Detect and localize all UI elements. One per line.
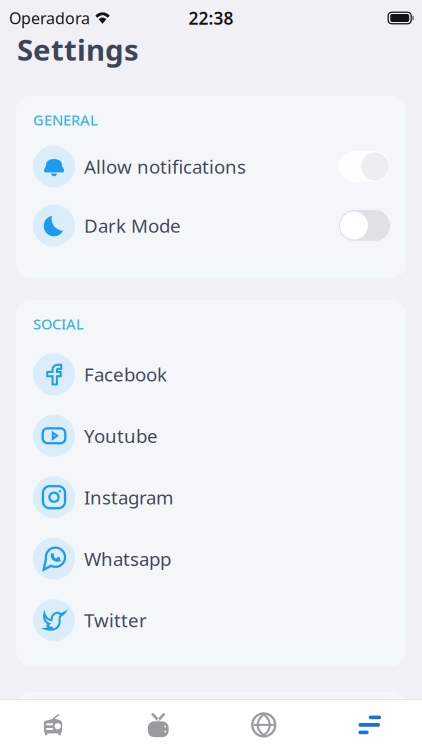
button[interactable]: Settings xyxy=(316,700,422,750)
staticText: Youtube xyxy=(84,423,158,448)
button[interactable]: Youtube xyxy=(16,405,406,467)
button[interactable]: Browse xyxy=(211,700,316,750)
staticText: 22:38 xyxy=(188,6,233,29)
button[interactable]: Dark Mode xyxy=(16,196,406,255)
button[interactable]: Twitter xyxy=(16,589,406,651)
button[interactable]: Facebook xyxy=(16,344,406,405)
staticText: Settings xyxy=(17,30,139,69)
staticText: SOCIAL xyxy=(33,314,84,333)
staticText: Allow notifications xyxy=(84,154,246,179)
staticText: Dark Mode xyxy=(84,213,181,238)
staticText: Twitter xyxy=(84,608,147,632)
staticText: Whatsapp xyxy=(84,546,171,571)
staticText: Operadora xyxy=(9,7,90,29)
button[interactable]: Radio xyxy=(0,700,105,750)
button[interactable]: Allow notifications xyxy=(16,137,406,196)
staticText: GENERAL xyxy=(33,110,98,129)
staticText: Instagram xyxy=(84,485,173,510)
button[interactable]: TV xyxy=(105,700,211,750)
button[interactable]: Whatsapp xyxy=(16,528,406,589)
button[interactable]: Instagram xyxy=(16,466,406,528)
staticText: Facebook xyxy=(84,362,167,387)
